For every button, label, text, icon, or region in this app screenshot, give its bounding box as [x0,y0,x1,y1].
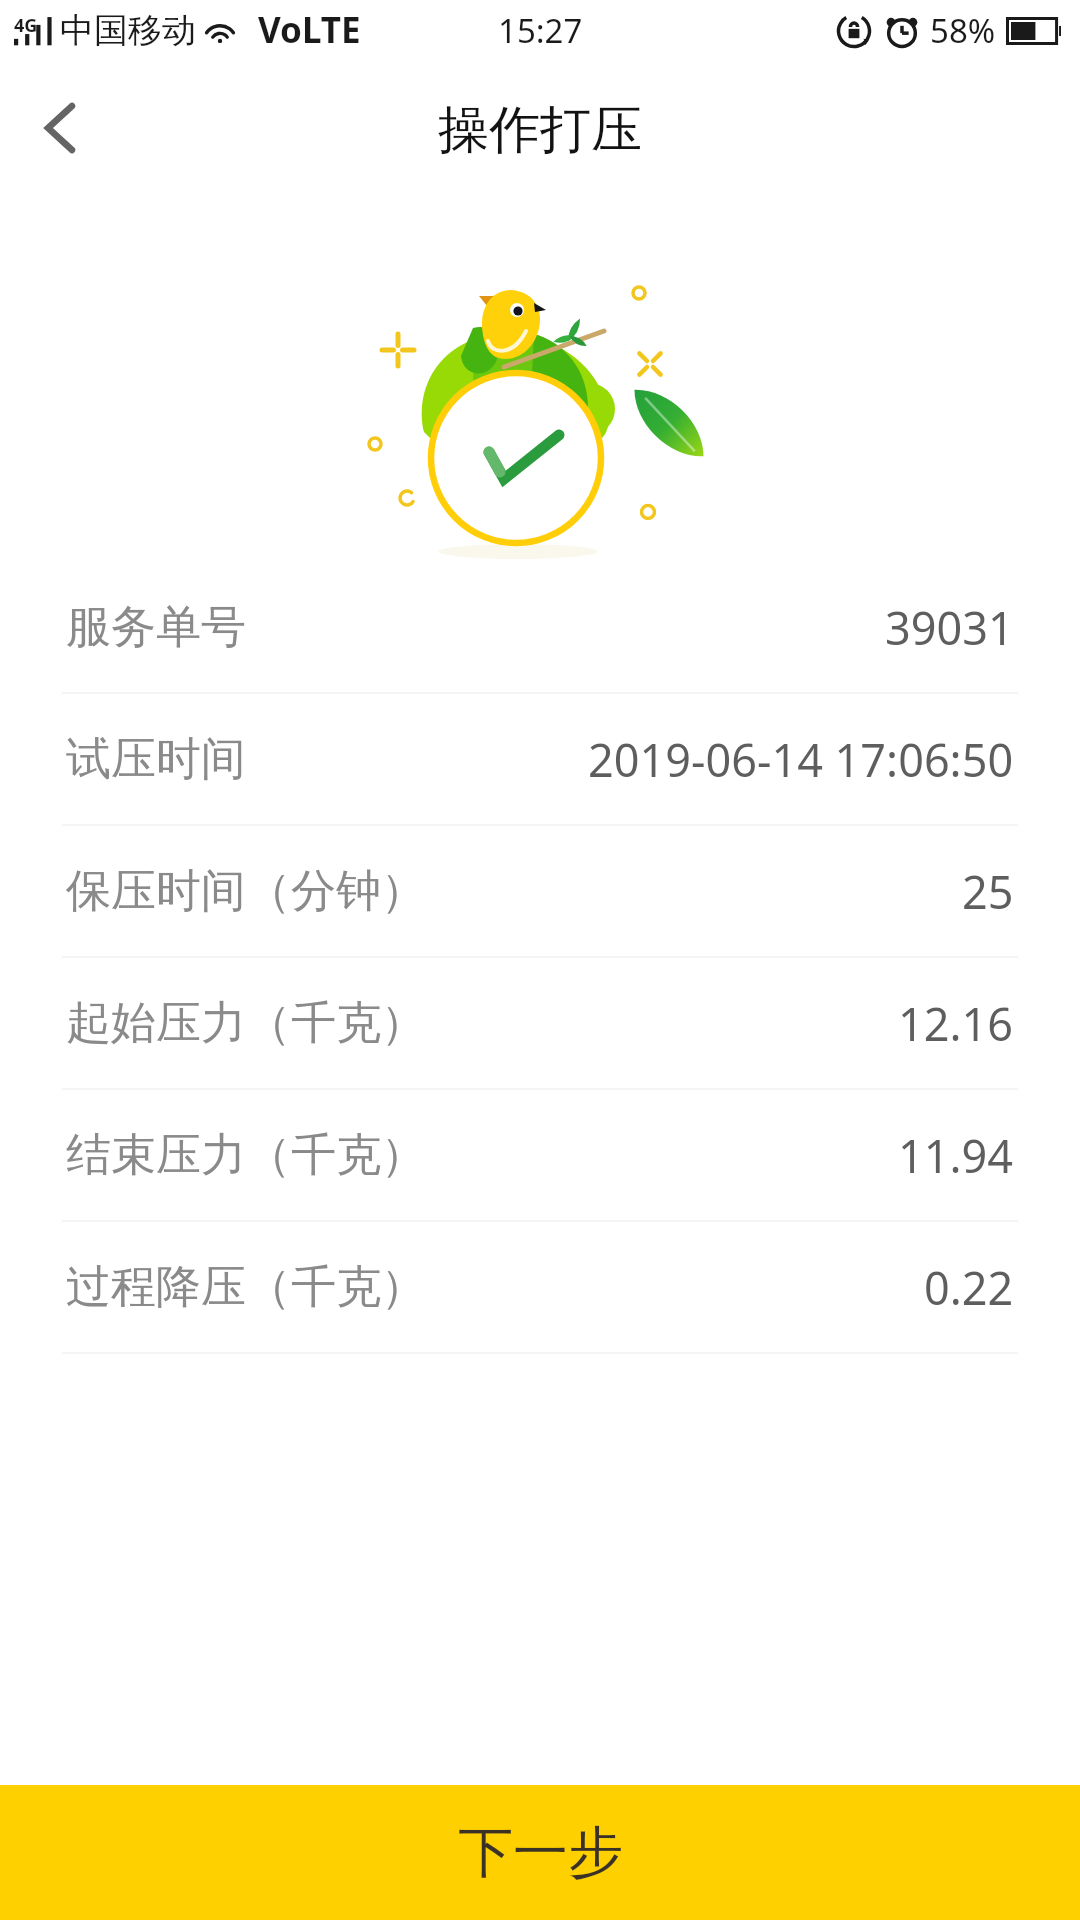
button[interactable]: 试压时间 [0,694,1080,824]
staticText: 操作打压 [438,98,642,162]
staticText: 起始压力（千克） [66,995,426,1052]
staticText: 试压时间 [66,731,246,788]
staticText: 过程降压（千克） [66,1259,426,1316]
button[interactable]: 保压时间（分钟） [0,826,1080,956]
button[interactable]: 起始压力（千克） [0,958,1080,1088]
staticText: VoLTE [258,6,361,54]
staticText: 58% [930,8,996,53]
staticText: 15:27 [498,8,583,53]
staticText: 下一步 [458,1818,623,1887]
staticText: 11.94 [898,1125,1014,1186]
staticText: 39031 [885,597,1014,658]
staticText: 2019-06-14 17:06:50 [588,729,1014,790]
staticText: 12.16 [898,993,1014,1054]
staticText: 0.22 [924,1257,1014,1318]
staticText: 中国移动 [60,9,196,52]
staticText: 保压时间（分钟） [66,863,426,920]
staticText: 服务单号 [66,599,246,656]
staticText: 25 [962,861,1014,922]
button[interactable]: 过程降压（千克） [0,1222,1080,1352]
button[interactable]: 下一步 [0,1785,1080,1920]
button[interactable]: Back [0,60,120,190]
staticText: 4G [14,13,38,38]
button[interactable]: 服务单号 [0,562,1080,692]
staticText: 结束压力（千克） [66,1127,426,1184]
button[interactable]: 结束压力（千克） [0,1090,1080,1220]
